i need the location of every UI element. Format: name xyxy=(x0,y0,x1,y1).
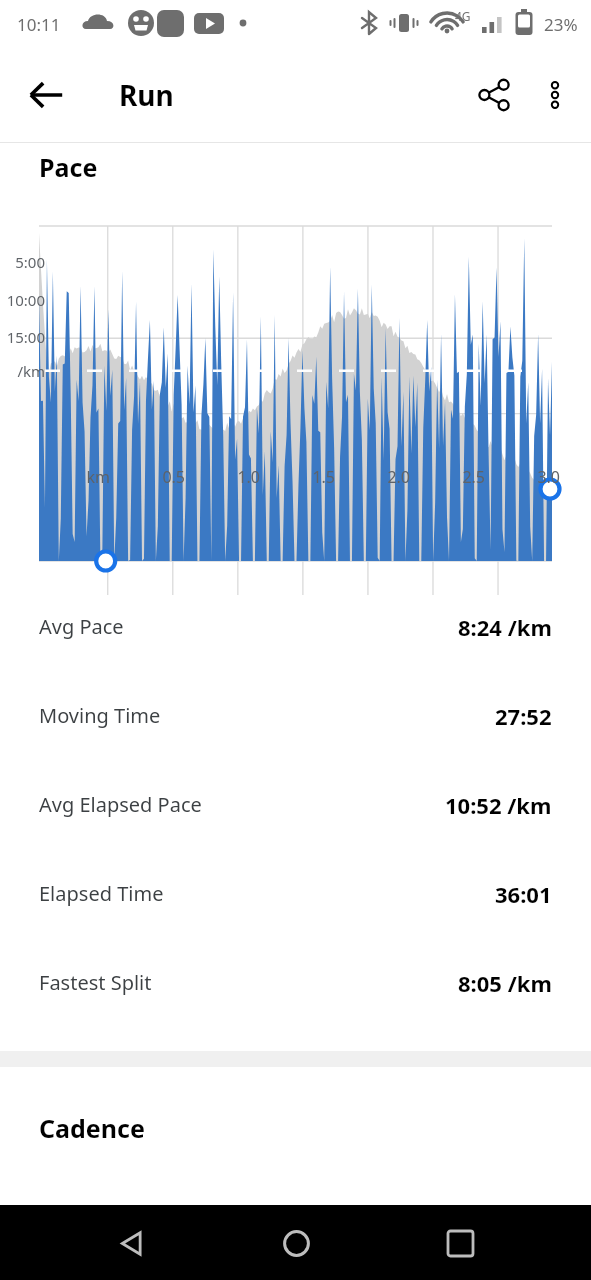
button[interactable]: Back xyxy=(98,1210,164,1276)
staticText: 27:52 xyxy=(495,701,552,731)
button[interactable]: Avg Elapsed Pace xyxy=(0,760,591,849)
staticText: 0.5 xyxy=(0,466,185,488)
staticText: km xyxy=(0,466,110,488)
button[interactable]: Home xyxy=(263,1210,329,1276)
staticText: 8:05 /km xyxy=(458,968,552,998)
staticText: 36:01 xyxy=(495,879,552,909)
staticText: Avg Elapsed Pace xyxy=(39,791,202,818)
staticText: 10:00 xyxy=(0,290,45,310)
staticText: 23% xyxy=(544,13,578,36)
staticText: Elapsed Time xyxy=(39,880,164,907)
button[interactable]: Elapsed Time xyxy=(0,849,591,938)
staticText: 8:24 /km xyxy=(458,612,552,642)
button[interactable]: Back xyxy=(12,61,80,129)
button[interactable]: Moving Time xyxy=(0,671,591,760)
staticText: 3.0 xyxy=(0,466,560,488)
staticText: Pace xyxy=(39,150,98,184)
button[interactable]: Avg Pace xyxy=(0,582,591,671)
button[interactable]: Recents xyxy=(427,1210,493,1276)
staticText: Moving Time xyxy=(39,702,161,729)
staticText: 4G xyxy=(455,8,471,24)
button[interactable]: More options xyxy=(525,65,585,125)
button[interactable]: Fastest Split xyxy=(0,938,591,1027)
staticText: /km xyxy=(0,361,45,381)
staticText: 5:00 xyxy=(0,252,45,272)
button[interactable]: Share xyxy=(463,64,525,126)
staticText: 2.0 xyxy=(0,466,410,488)
staticText: Fastest Split xyxy=(39,969,152,996)
staticText: 1.0 xyxy=(0,466,260,488)
staticText: Run xyxy=(119,76,174,114)
staticText: 2.5 xyxy=(0,466,485,488)
staticText: 15:00 xyxy=(0,327,45,347)
staticText: 1.5 xyxy=(0,466,335,488)
staticText: 10:52 /km xyxy=(445,790,552,820)
staticText: Cadence xyxy=(39,1111,145,1145)
staticText: 10:11 xyxy=(17,13,61,36)
staticText: Avg Pace xyxy=(39,613,124,640)
